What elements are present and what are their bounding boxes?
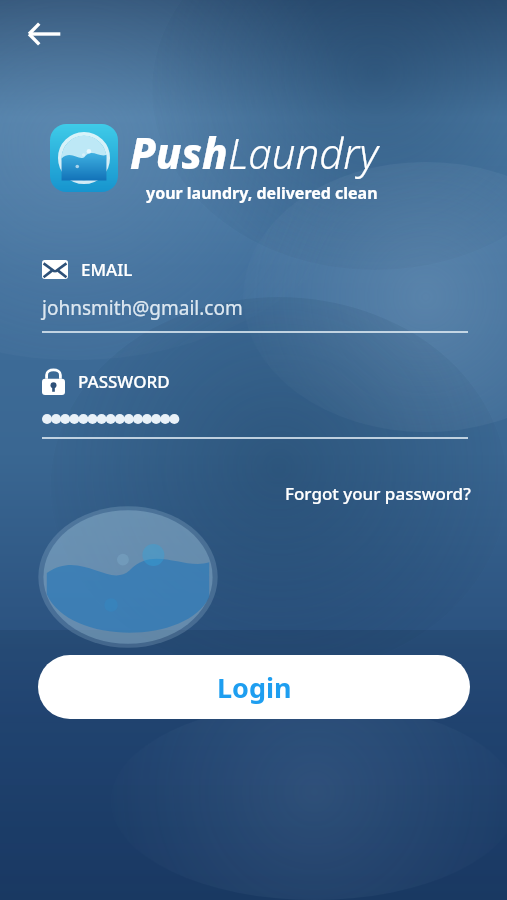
staticText: PASSWORD	[78, 370, 170, 393]
staticText: Push	[130, 124, 228, 181]
staticText: Forgot your password?	[285, 482, 471, 505]
staticText: johnsmith@gmail.com	[42, 295, 243, 321]
staticText: Login	[217, 669, 292, 706]
staticText: EMAIL	[81, 258, 133, 281]
staticText: your laundry, delivered clean	[146, 182, 378, 204]
button[interactable]: Login	[38, 655, 470, 719]
button[interactable]: Forgot your password?	[279, 478, 477, 509]
staticText: Laundry	[228, 124, 378, 181]
button[interactable]: Back	[14, 8, 74, 60]
